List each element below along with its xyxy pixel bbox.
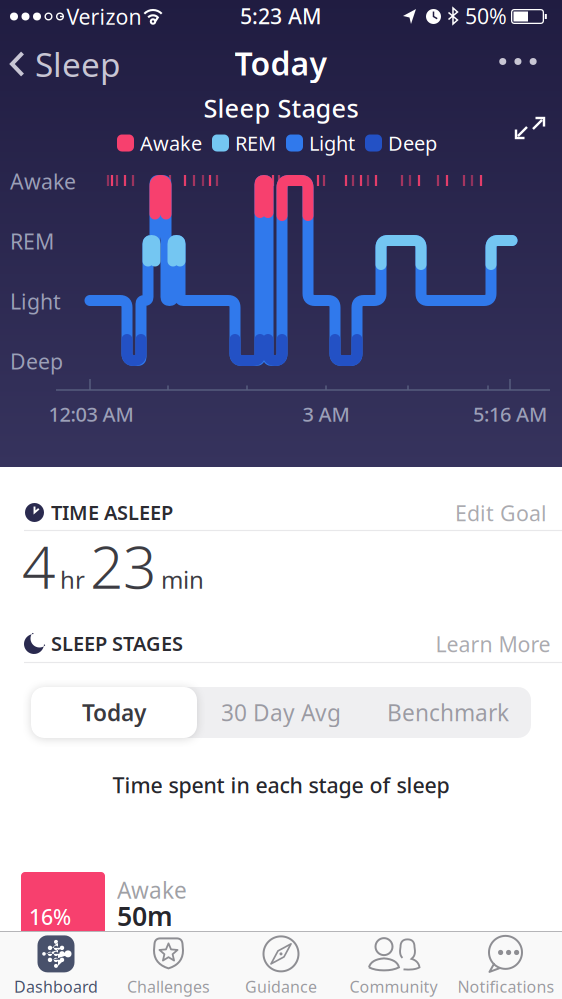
button[interactable]: Challenges (112, 934, 224, 998)
staticText: Awake (140, 130, 202, 156)
staticText: Dashboard (14, 976, 98, 997)
staticText: Community (349, 976, 437, 997)
button[interactable]: More (489, 48, 547, 75)
button[interactable]: Notifications (450, 934, 562, 998)
staticText: REM (10, 227, 54, 255)
staticText: Light (10, 287, 61, 315)
button[interactable]: Learn More (429, 624, 556, 664)
staticText: Today (234, 42, 327, 84)
staticText: 12:03 AM (48, 401, 133, 427)
staticText: Awake (10, 167, 76, 195)
staticText: Sleep Stages (203, 91, 358, 125)
staticText: 4 (22, 527, 55, 605)
staticText: Edit Goal (455, 499, 547, 527)
staticText: Today (82, 697, 146, 727)
button[interactable]: 30 Day Avg (198, 687, 364, 738)
button[interactable]: Expand chart (508, 106, 552, 150)
button[interactable]: Guidance (225, 934, 337, 998)
staticText: Deep (388, 130, 437, 156)
staticText: 23 (90, 527, 156, 605)
staticText: 50m (117, 898, 173, 933)
button[interactable]: Community (337, 934, 449, 998)
staticText: hr (60, 563, 85, 595)
staticText: Verizon (66, 2, 141, 31)
button[interactable]: Edit Goal (449, 493, 553, 533)
staticText: Challenges (127, 976, 210, 997)
staticText: REM (235, 130, 276, 156)
button[interactable]: Benchmark (365, 687, 531, 738)
button[interactable]: Dashboard (0, 934, 112, 998)
staticText: 5:23 AM (240, 2, 322, 30)
staticText: SLEEP STAGES (51, 630, 183, 657)
staticText: Learn More (435, 630, 550, 658)
staticText: Guidance (245, 976, 317, 997)
staticText: 3 AM (302, 401, 349, 427)
staticText: TIME ASLEEP (51, 499, 173, 526)
staticText: 5:16 AM (473, 401, 547, 427)
staticText: Deep (10, 347, 63, 375)
staticText: 50% (465, 2, 507, 30)
staticText: Light (309, 130, 355, 156)
staticText: Time spent in each stage of sleep (112, 771, 449, 799)
staticText: Sleep (35, 42, 121, 86)
button[interactable]: Sleep (0, 37, 121, 91)
staticText: Notifications (457, 976, 554, 997)
staticText: 30 Day Avg (221, 697, 341, 727)
staticText: Benchmark (387, 697, 509, 727)
staticText: min (161, 563, 204, 595)
staticText: 16% (29, 903, 71, 931)
staticText: Awake (117, 875, 187, 905)
button[interactable]: Today (31, 687, 197, 738)
